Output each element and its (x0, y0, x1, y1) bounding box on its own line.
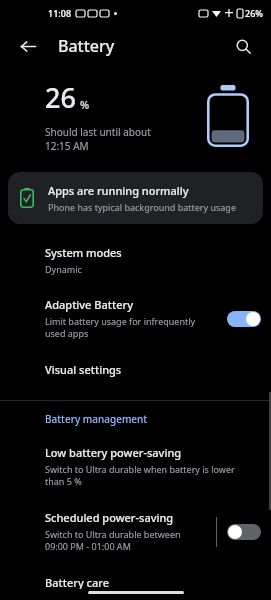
staticText: Should last until about 12:15 AM (45, 125, 151, 153)
button[interactable]: Search (227, 30, 259, 62)
staticText: System modes (45, 245, 122, 260)
staticText: 26% (245, 7, 263, 19)
button[interactable]: Apps are running normally (8, 172, 263, 224)
staticText: Dynamic (45, 263, 82, 275)
staticText: Apps are running normally (48, 183, 189, 198)
button[interactable]: Visual settings (0, 351, 271, 388)
button[interactable]: Adaptive Battery (0, 286, 271, 351)
button[interactable]: Scheduled power-saving (0, 499, 271, 564)
staticText: Scheduled power-saving (45, 510, 174, 525)
staticText: Switch to Ultra durable when battery is … (45, 463, 235, 488)
staticText: Low battery power-saving (45, 445, 182, 460)
staticText: Adaptive Battery (45, 297, 133, 312)
staticText: % (80, 97, 90, 112)
staticText: Battery care (45, 575, 109, 589)
staticText: 11:08 (48, 7, 72, 19)
button[interactable]: System modes (0, 234, 271, 286)
button[interactable]: Low battery power-saving (0, 434, 271, 499)
button[interactable]: Toggle on (227, 311, 261, 327)
staticText: 26 (45, 79, 76, 116)
staticText: Battery management (45, 412, 148, 426)
staticText: Phone has typical background battery usa… (48, 201, 236, 213)
staticText: Battery (58, 35, 115, 57)
staticText: Limit battery usage for infrequently use… (45, 315, 196, 340)
button[interactable]: Toggle off (227, 524, 261, 540)
button[interactable]: Battery care (0, 564, 271, 600)
staticText: Visual settings (45, 362, 122, 377)
button[interactable]: Back (12, 30, 44, 62)
staticText: Switch to Ultra durable between 09:00 PM… (45, 528, 181, 553)
